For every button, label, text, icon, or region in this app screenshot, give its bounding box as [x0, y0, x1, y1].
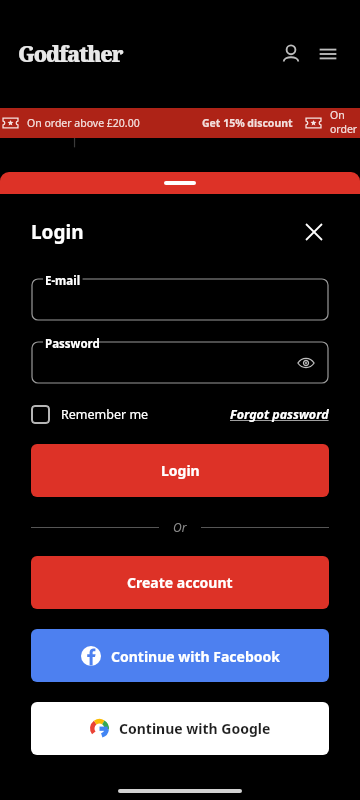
button[interactable]: Account: [273, 36, 309, 72]
staticText: Continue with Facebook: [111, 647, 280, 666]
button[interactable]: Continue with Facebook: [31, 629, 329, 682]
staticText: Remember me: [61, 406, 149, 423]
button[interactable]: Show password: [293, 350, 319, 376]
staticText: Get 15% discount: [202, 116, 293, 130]
button[interactable]: Create account: [31, 556, 329, 609]
button[interactable]: Remember me: [31, 405, 149, 424]
staticText: Login: [161, 461, 200, 480]
staticText: Forgot password: [230, 406, 329, 423]
staticText: Password: [45, 336, 100, 352]
button[interactable]: Continue with Google: [31, 702, 329, 755]
button[interactable]: Login: [31, 444, 329, 497]
staticText: On order above £20.00: [27, 116, 140, 130]
button[interactable]: Godfather: [18, 40, 123, 69]
staticText: Create account: [127, 573, 233, 592]
staticText: On order above: [330, 108, 360, 138]
staticText: Login: [31, 219, 84, 245]
button[interactable]: Forgot password: [230, 406, 329, 423]
staticText: Godfather: [18, 40, 123, 69]
staticText: Or: [173, 519, 187, 535]
button[interactable]: Menu: [310, 36, 346, 72]
staticText: Continue with Google: [119, 719, 271, 738]
button[interactable]: Close: [299, 217, 329, 247]
staticText: E-mail: [45, 273, 81, 289]
